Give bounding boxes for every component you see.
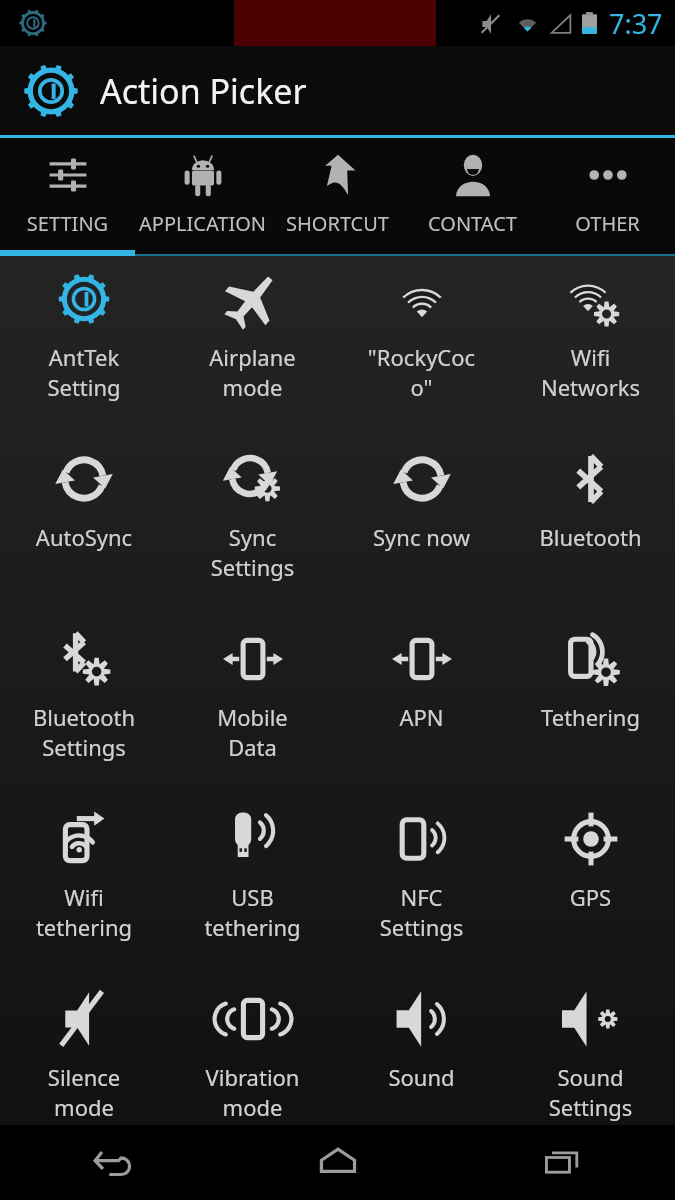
staticText: mode <box>168 1092 337 1122</box>
staticText: Data <box>168 732 337 762</box>
staticText: AntTek <box>0 342 168 372</box>
button[interactable]: SHORTCUT <box>270 138 405 256</box>
staticText: Networks <box>506 372 675 402</box>
button[interactable]: AntTek <box>0 256 168 436</box>
button[interactable]: Sound <box>337 976 506 1125</box>
button[interactable]: Wifi <box>0 796 168 976</box>
staticText: mode <box>0 1092 168 1122</box>
button[interactable]: Bluetooth <box>0 616 168 796</box>
staticText: Settings <box>168 552 337 582</box>
staticText: Setting <box>0 372 168 402</box>
staticText: NFC <box>337 882 506 912</box>
staticText: o" <box>337 372 506 402</box>
staticText: Vibration <box>168 1062 337 1092</box>
button[interactable]: CONTACT <box>405 138 540 256</box>
staticText: SETTING <box>0 210 135 237</box>
staticText: Action Picker <box>100 68 307 114</box>
staticText: APN <box>337 702 506 732</box>
staticText: Sound <box>337 1062 506 1092</box>
button[interactable]: Vibration <box>168 976 337 1125</box>
staticText: OTHER <box>540 210 675 237</box>
staticText: Settings <box>337 912 506 942</box>
button[interactable]: GPS <box>506 796 675 976</box>
staticText: Wifi <box>0 882 168 912</box>
button[interactable]: Silence <box>0 976 168 1125</box>
staticText: Settings <box>506 1092 675 1122</box>
button[interactable]: Sync <box>168 436 337 616</box>
button[interactable]: Back <box>0 1125 225 1200</box>
staticText: Sync now <box>337 522 506 552</box>
staticText: Silence <box>0 1062 168 1092</box>
button[interactable]: Bluetooth <box>506 436 675 616</box>
staticText: 7:37 <box>609 5 663 42</box>
button[interactable]: Sound <box>506 976 675 1125</box>
button[interactable]: OTHER <box>540 138 675 256</box>
staticText: USB <box>168 882 337 912</box>
staticText: Bluetooth <box>506 522 675 552</box>
button[interactable]: APPLICATION <box>135 138 270 256</box>
staticText: AutoSync <box>0 522 168 552</box>
button[interactable]: Tethering <box>506 616 675 796</box>
button[interactable]: Mobile <box>168 616 337 796</box>
staticText: mode <box>168 372 337 402</box>
button[interactable]: SETTING <box>0 138 135 256</box>
staticText: SHORTCUT <box>270 210 405 237</box>
staticText: Bluetooth <box>0 702 168 732</box>
staticText: Airplane <box>168 342 337 372</box>
staticText: Settings <box>0 732 168 762</box>
staticText: Sound <box>506 1062 675 1092</box>
staticText: APPLICATION <box>135 210 270 237</box>
staticText: Sync <box>168 522 337 552</box>
staticText: GPS <box>506 882 675 912</box>
staticText: Tethering <box>506 702 675 732</box>
staticText: Wifi <box>506 342 675 372</box>
button[interactable]: AutoSync <box>0 436 168 616</box>
staticText: "RockyCoc <box>337 342 506 372</box>
button[interactable]: Home <box>225 1125 450 1200</box>
button[interactable]: USB <box>168 796 337 976</box>
button[interactable]: Airplane <box>168 256 337 436</box>
button[interactable]: NFC <box>337 796 506 976</box>
staticText: CONTACT <box>405 210 540 237</box>
button[interactable]: APN <box>337 616 506 796</box>
button[interactable]: Recent apps <box>450 1125 675 1200</box>
staticText: tethering <box>0 912 168 942</box>
button[interactable]: Sync now <box>337 436 506 616</box>
staticText: tethering <box>168 912 337 942</box>
button[interactable]: Wifi <box>506 256 675 436</box>
button[interactable]: "RockyCoc <box>337 256 506 436</box>
staticText: Mobile <box>168 702 337 732</box>
